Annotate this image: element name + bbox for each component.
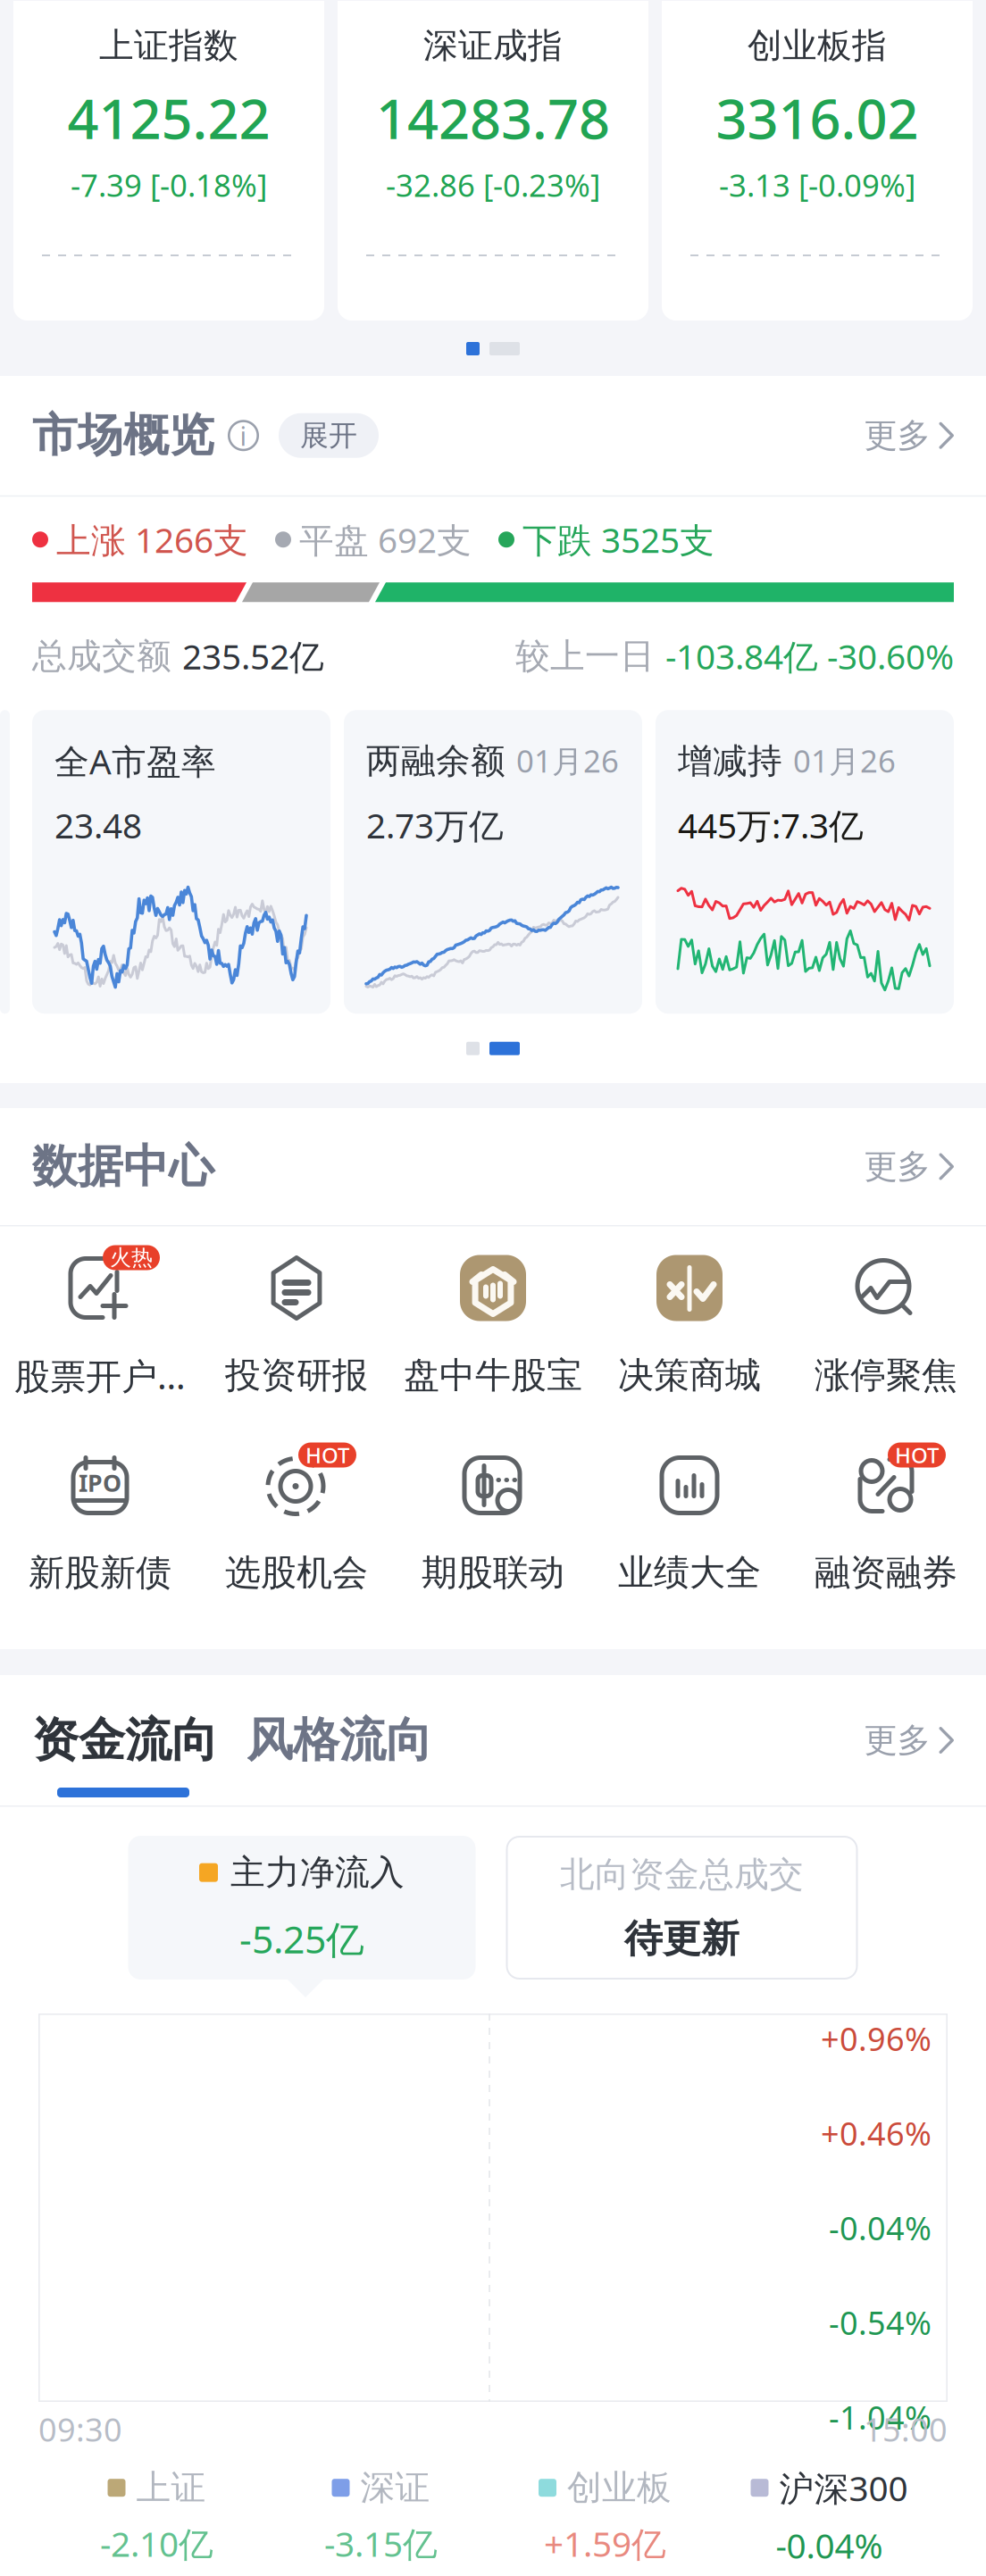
staticText: HOT [895,1441,939,1469]
staticText: 数据中心 [32,1139,214,1194]
staticText: -103.84亿 -30.60% [665,633,954,679]
staticText: 较上一日 [515,635,665,677]
staticText: 业绩大全 [618,1551,761,1595]
button[interactable]: 展开 [279,413,379,458]
staticText: i [240,418,247,453]
button[interactable]: 全A市盈率 [32,710,330,1014]
staticText: +0.46% [821,2112,932,2154]
staticText: 2.73万亿 [366,802,504,848]
staticText: 09:30 [38,2408,122,2450]
staticText: 融资融券 [815,1551,957,1595]
button[interactable]: 主力净流入 [128,1836,476,1980]
staticText: 待更新 [624,1915,739,1962]
staticText: +1.59亿 [544,2521,666,2566]
staticText: -3.13 [-0.09%] [719,164,915,205]
staticText: 期股联动 [422,1551,564,1595]
staticText: 总成交额 [32,635,182,677]
staticText: +0.96% [821,2017,932,2060]
staticText: 火热 [110,1245,153,1271]
button[interactable]: 更多 [843,1707,954,1773]
button[interactable]: 增减持 [656,710,954,1014]
staticText: 深证成指 [423,24,563,67]
staticText: 股票开户… [14,1352,186,1399]
staticText: 更多 [864,415,930,456]
staticText: -5.25亿 [239,1913,364,1964]
staticText: -7.39 [-0.18%] [71,164,267,205]
staticText: 北向资金总成交 [560,1853,804,1896]
staticText: 创业板指 [748,24,887,67]
button[interactable]: 创业板指 [662,1,973,321]
staticText: 增减持 [678,740,782,782]
staticText: 沪深300 [779,2465,908,2511]
button[interactable]: 北向资金总成交 [506,1836,858,1980]
button[interactable]: 盘中牛股宝 [395,1255,591,1434]
staticText: 3316.02 [716,82,919,154]
button[interactable]: 业绩大全 [591,1452,788,1631]
staticText: 全A市盈率 [54,738,216,784]
staticText: 选股机会 [225,1551,368,1595]
button[interactable]: 决策商城 [591,1255,788,1434]
staticText: 资金流向 [32,1712,218,1769]
staticText: 445万:7.3亿 [678,802,864,848]
staticText: -1.04% [829,2396,932,2438]
button[interactable]: 深证成指 [338,1,648,321]
staticText: 深证 [360,2467,430,2509]
staticText: 上证指数 [99,24,238,67]
button[interactable]: HOT [198,1452,395,1631]
button[interactable]: 火热 [2,1255,198,1434]
staticText: 15:00 [864,2408,948,2450]
staticText: -0.54% [829,2301,932,2344]
staticText: HOT [305,1441,349,1469]
staticText: 市场概览 [32,408,214,463]
staticText: 新股新债 [29,1551,171,1595]
staticText: 决策商城 [618,1354,761,1397]
staticText: -32.86 [-0.23%] [386,164,600,205]
staticText: 涨停聚焦 [815,1354,957,1397]
button[interactable]: 两融余额 [344,710,642,1014]
staticText: 风格流向 [246,1712,432,1769]
staticText: 两融余额 [366,740,506,782]
staticText: 投资研报 [225,1354,368,1397]
staticText: -0.04% [829,2206,932,2249]
staticText: IPO [79,1467,121,1498]
button[interactable]: HOT [788,1452,984,1631]
button[interactable]: 上证指数 [13,1,324,321]
button[interactable]: 涨停聚焦 [788,1255,984,1434]
staticText: 更多 [864,1146,930,1187]
staticText: 4125.22 [67,82,270,154]
staticText: 平盘 692支 [299,517,472,562]
staticText: -2.10亿 [100,2521,213,2566]
staticText: 展开 [300,418,357,453]
staticText: 更多 [864,1720,930,1761]
staticText: 上证 [136,2467,206,2509]
button[interactable]: 更多 [843,403,954,469]
staticText: 01月26 [793,740,896,781]
staticText: 上涨 1266支 [56,517,248,562]
staticText: 创业板 [567,2467,672,2509]
button[interactable]: 更多 [843,1134,954,1200]
button[interactable]: 风格流向 [246,1699,432,1781]
staticText: 盘中牛股宝 [404,1354,582,1397]
staticText: 01月26 [516,740,619,781]
button[interactable]: 资金流向 [32,1699,218,1781]
staticText: 主力净流入 [230,1851,405,1894]
staticText: 23.48 [54,802,142,848]
staticText: -3.15亿 [324,2521,438,2566]
staticText: 14283.78 [376,82,610,154]
staticText: 下跌 3525支 [522,517,714,562]
staticText: -0.04% [776,2522,883,2568]
staticText: 235.52亿 [182,633,324,679]
button[interactable]: 期股联动 [395,1452,591,1631]
button[interactable]: IPO [2,1452,198,1631]
button[interactable]: 投资研报 [198,1255,395,1434]
